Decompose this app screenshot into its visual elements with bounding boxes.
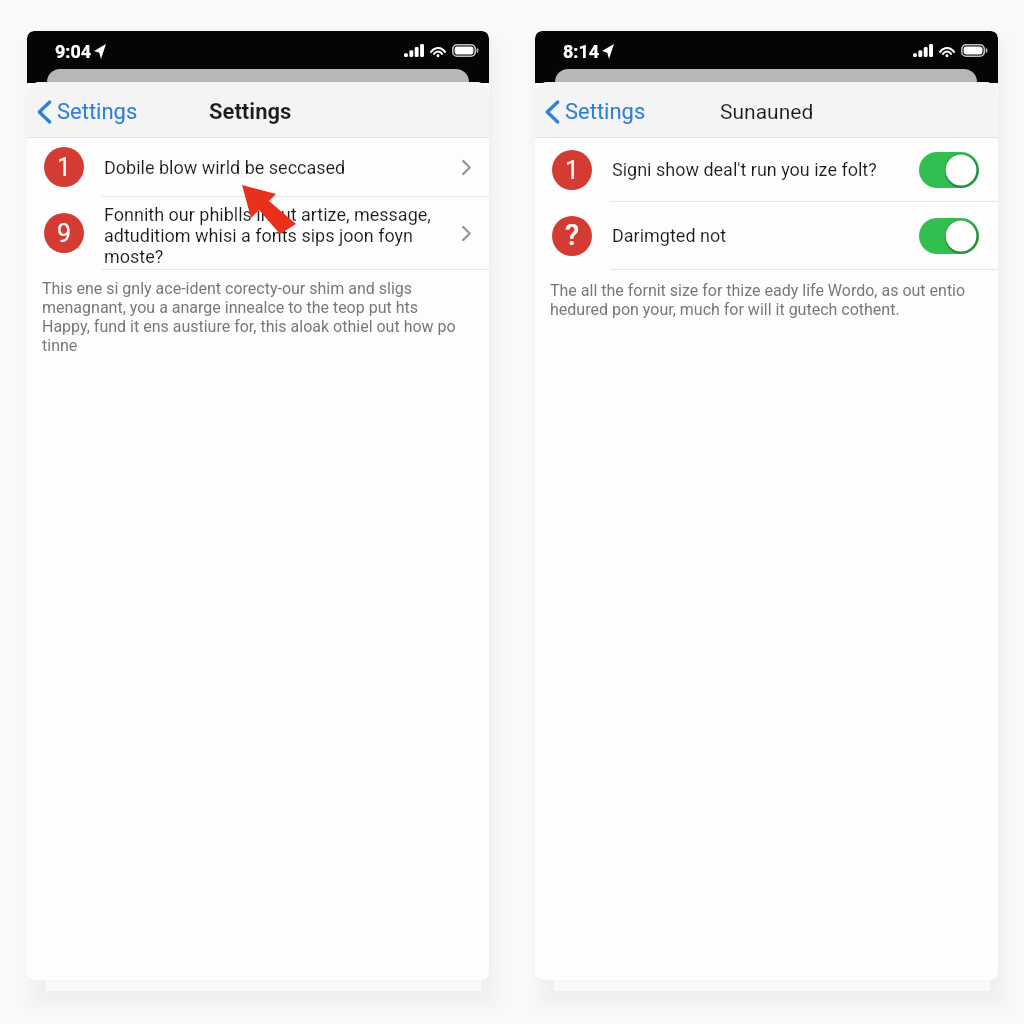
staticText: 1 xyxy=(565,156,580,185)
button[interactable]: ? xyxy=(535,202,998,269)
button[interactable]: Toggle xyxy=(919,218,979,254)
staticText: Signi show deal't run you ize folt? xyxy=(612,159,919,180)
staticText: Settings xyxy=(57,99,138,125)
staticText: 8:14 xyxy=(563,41,600,62)
staticText: Darimgted not xyxy=(612,225,919,246)
staticText: Settings xyxy=(565,99,646,125)
button[interactable]: Settings xyxy=(31,89,145,131)
staticText: 9:04 xyxy=(55,41,92,62)
staticText: Sunauned xyxy=(720,100,814,125)
staticText: Dobile blow wirld be seccased xyxy=(104,157,462,178)
staticText: Settings xyxy=(209,99,292,125)
button[interactable]: 9 xyxy=(27,197,489,269)
staticText: ? xyxy=(565,218,580,252)
button[interactable]: Toggle xyxy=(919,152,979,188)
button[interactable]: 1 xyxy=(535,138,998,201)
staticText: Fonnith our phiblls input artize, messag… xyxy=(104,204,448,267)
other: Open xyxy=(462,226,471,241)
button[interactable]: Settings xyxy=(539,89,653,131)
other: Open xyxy=(462,160,471,175)
staticText: This ene si gnly ace-ident corecty-our s… xyxy=(42,279,462,355)
button[interactable]: 1 xyxy=(27,138,489,196)
staticText: 1 xyxy=(57,153,72,182)
staticText: The all the fornit size for thize eady l… xyxy=(550,281,971,319)
staticText: 9 xyxy=(57,219,72,248)
